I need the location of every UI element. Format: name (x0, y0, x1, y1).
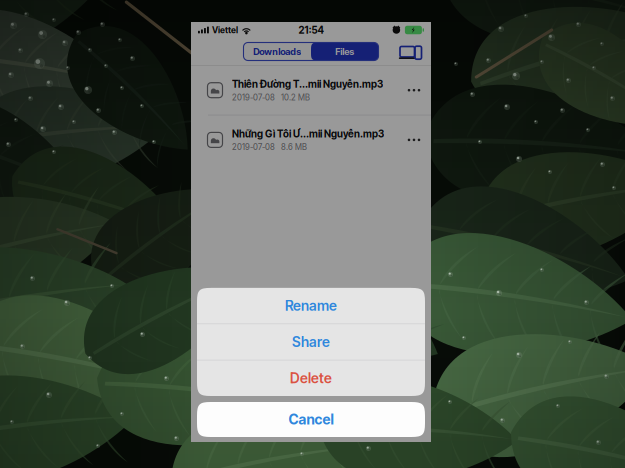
button[interactable]: Share (197, 324, 425, 360)
staticText: 10.2 MB (281, 93, 310, 102)
staticText: Delete (290, 370, 332, 387)
button[interactable]: Rename (197, 288, 425, 323)
staticText: Cancel (288, 411, 333, 428)
staticText: Thiên Đường T...mii Nguyễn.mp3 (232, 78, 383, 90)
button[interactable]: Những Gì Tôi Ư...mii Nguyễn.mp3 (191, 115, 431, 164)
button[interactable]: Cancel (197, 402, 425, 437)
button[interactable]: Transfer to computer (396, 42, 420, 60)
staticText: Files (335, 46, 354, 57)
staticText: 21:54 (298, 24, 323, 36)
button[interactable]: Downloads (243, 42, 311, 60)
staticText: 8.6 MB (281, 142, 307, 152)
button[interactable]: More options (403, 78, 425, 102)
button[interactable]: Files (311, 42, 378, 60)
staticText: 2019-07-08 (232, 142, 275, 152)
staticText: Viettel (212, 25, 238, 35)
staticText: Những Gì Tôi Ư...mii Nguyễn.mp3 (232, 128, 384, 140)
staticText: Share (292, 333, 330, 350)
button[interactable]: Thiên Đường T...mii Nguyễn.mp3 (191, 66, 431, 115)
staticText: Downloads (253, 46, 301, 57)
staticText: 2019-07-08 (232, 93, 275, 102)
button[interactable]: More options (403, 128, 425, 152)
button[interactable]: Delete (197, 360, 425, 396)
staticText: Rename (285, 297, 337, 314)
